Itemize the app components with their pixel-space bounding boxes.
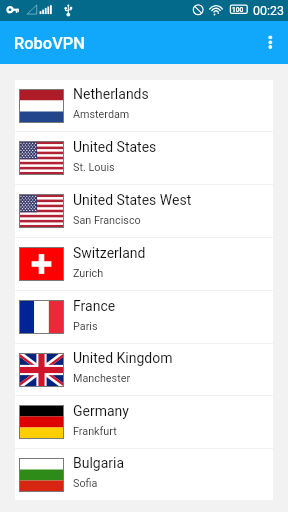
staticText: St. Louis — [73, 161, 115, 174]
staticText: Netherlands — [73, 86, 149, 102]
button[interactable]: Netherlands — [15, 80, 273, 131]
staticText: Frankfurt — [73, 425, 117, 438]
button[interactable]: United Kingdom — [15, 344, 273, 395]
staticText: 00:23 — [253, 3, 284, 18]
button[interactable]: United States West — [15, 185, 273, 237]
staticText: United States West — [73, 192, 192, 208]
staticText: Bulgaria — [73, 455, 125, 471]
staticText: Paris — [73, 320, 98, 333]
staticText: San Francisco — [73, 214, 141, 227]
staticText: United States — [73, 139, 157, 155]
staticText: Amsterdam — [73, 108, 130, 121]
button[interactable]: Bulgaria — [15, 449, 273, 500]
button[interactable]: France — [15, 291, 273, 343]
staticText: 100 — [232, 6, 244, 14]
button[interactable]: United States — [15, 132, 273, 184]
button[interactable]: Switzerland — [15, 238, 273, 290]
button[interactable]: More options — [253, 21, 288, 64]
staticText: Zurich — [73, 267, 104, 280]
staticText: Germany — [73, 403, 129, 419]
staticText: Switzerland — [73, 245, 146, 261]
button[interactable]: Germany — [15, 396, 273, 448]
staticText: United Kingdom — [73, 350, 173, 366]
staticText: France — [73, 298, 116, 314]
staticText: Sofia — [73, 477, 98, 490]
staticText: RoboVPN — [14, 34, 85, 53]
staticText: Manchester — [73, 372, 131, 385]
